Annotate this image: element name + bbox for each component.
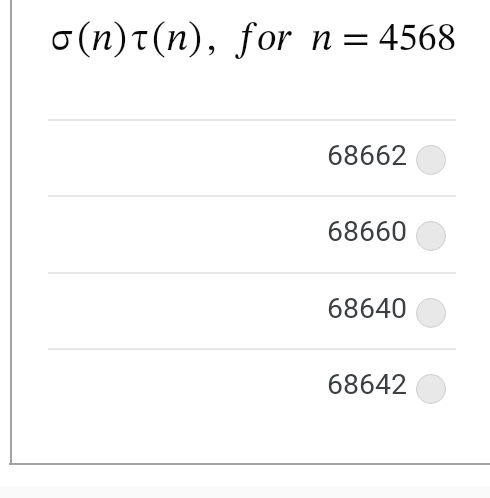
other: Select answer 68660 bbox=[416, 221, 446, 251]
staticText: σ (𝑛) τ (𝑛) , 𝑓𝑜𝑟 𝑛 = 4568 bbox=[51, 20, 457, 59]
button[interactable]: 68640 bbox=[0, 272, 490, 348]
staticText: 68642 bbox=[327, 368, 408, 401]
staticText: 68640 bbox=[327, 292, 408, 325]
other: Select answer 68640 bbox=[416, 298, 446, 328]
button[interactable]: 68662 bbox=[0, 119, 490, 195]
staticText: 68662 bbox=[327, 139, 408, 172]
button[interactable]: 68660 bbox=[0, 195, 490, 271]
other: Select answer 68662 bbox=[416, 145, 446, 175]
other: Select answer 68642 bbox=[416, 374, 446, 404]
staticText: 68660 bbox=[327, 215, 408, 248]
button[interactable]: 68642 bbox=[0, 348, 490, 424]
